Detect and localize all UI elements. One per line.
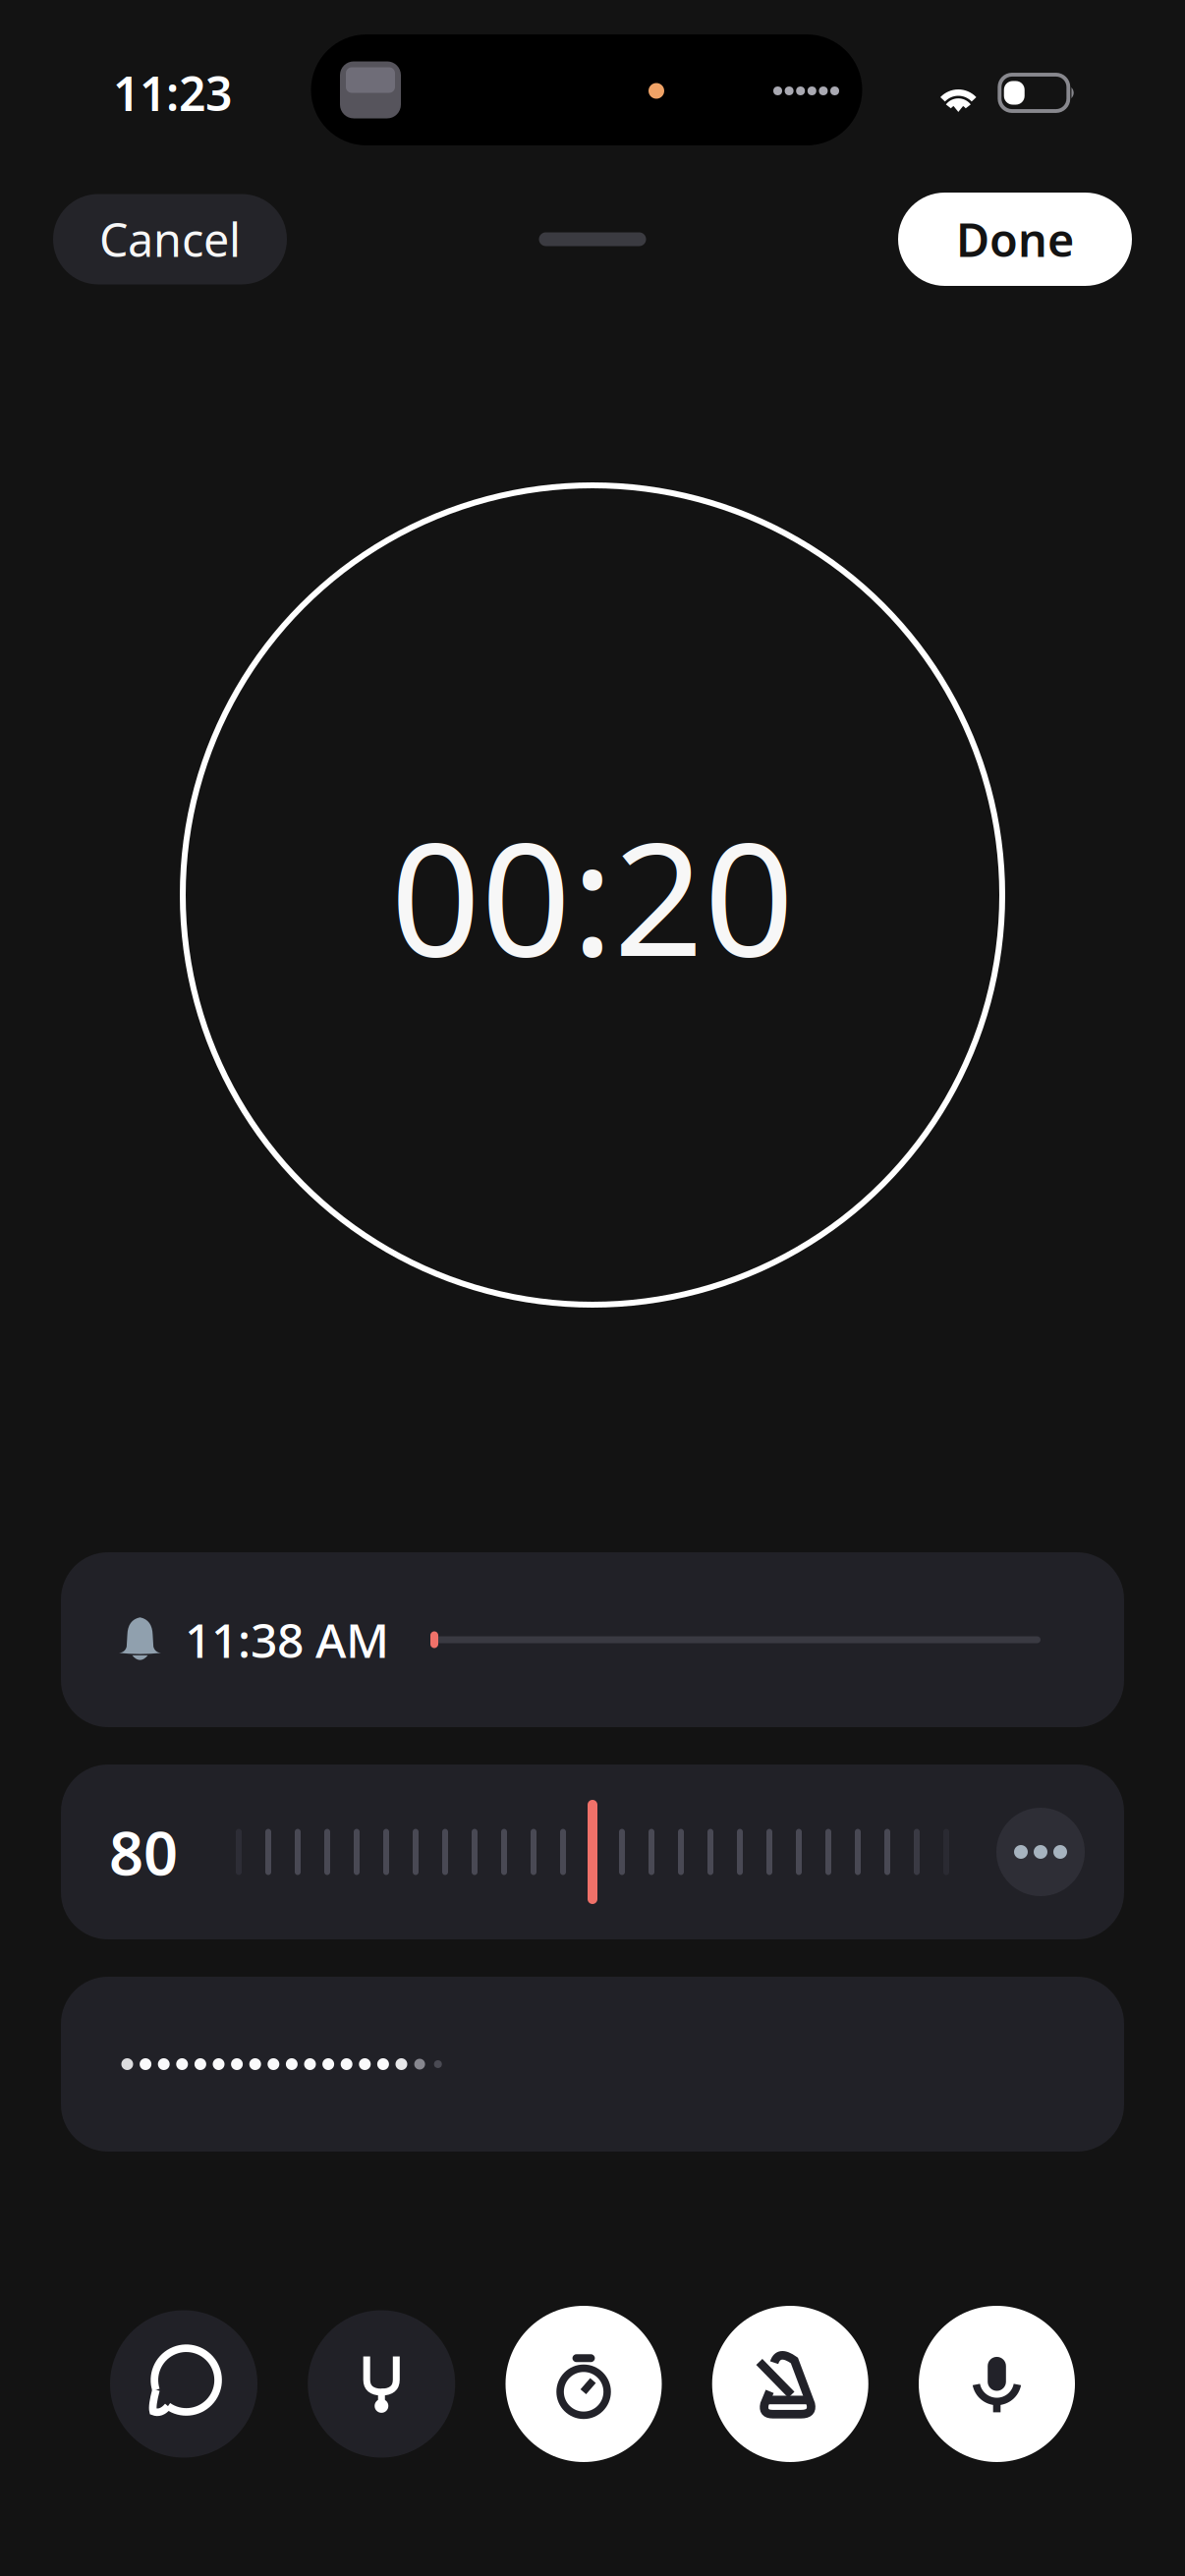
button[interactable]: Done xyxy=(898,193,1132,286)
staticText: Done xyxy=(956,209,1074,270)
staticText: 80 xyxy=(109,1812,178,1892)
button[interactable]: Chat xyxy=(110,2310,257,2458)
staticText: 00:20 xyxy=(391,791,794,999)
staticText: 11:23 xyxy=(113,62,232,124)
button[interactable]: Record xyxy=(919,2306,1075,2462)
button[interactable]: Timer xyxy=(506,2306,662,2462)
button[interactable]: Metronome xyxy=(712,2306,868,2462)
button[interactable]: 11:38 AM xyxy=(61,1552,1124,1727)
staticText: Cancel xyxy=(99,209,241,270)
button[interactable]: Cancel xyxy=(53,194,287,284)
staticText: 11:38 AM xyxy=(185,1608,389,1671)
button[interactable]: Tuner xyxy=(308,2310,455,2458)
button[interactable]: More tempo options xyxy=(996,1808,1085,1896)
